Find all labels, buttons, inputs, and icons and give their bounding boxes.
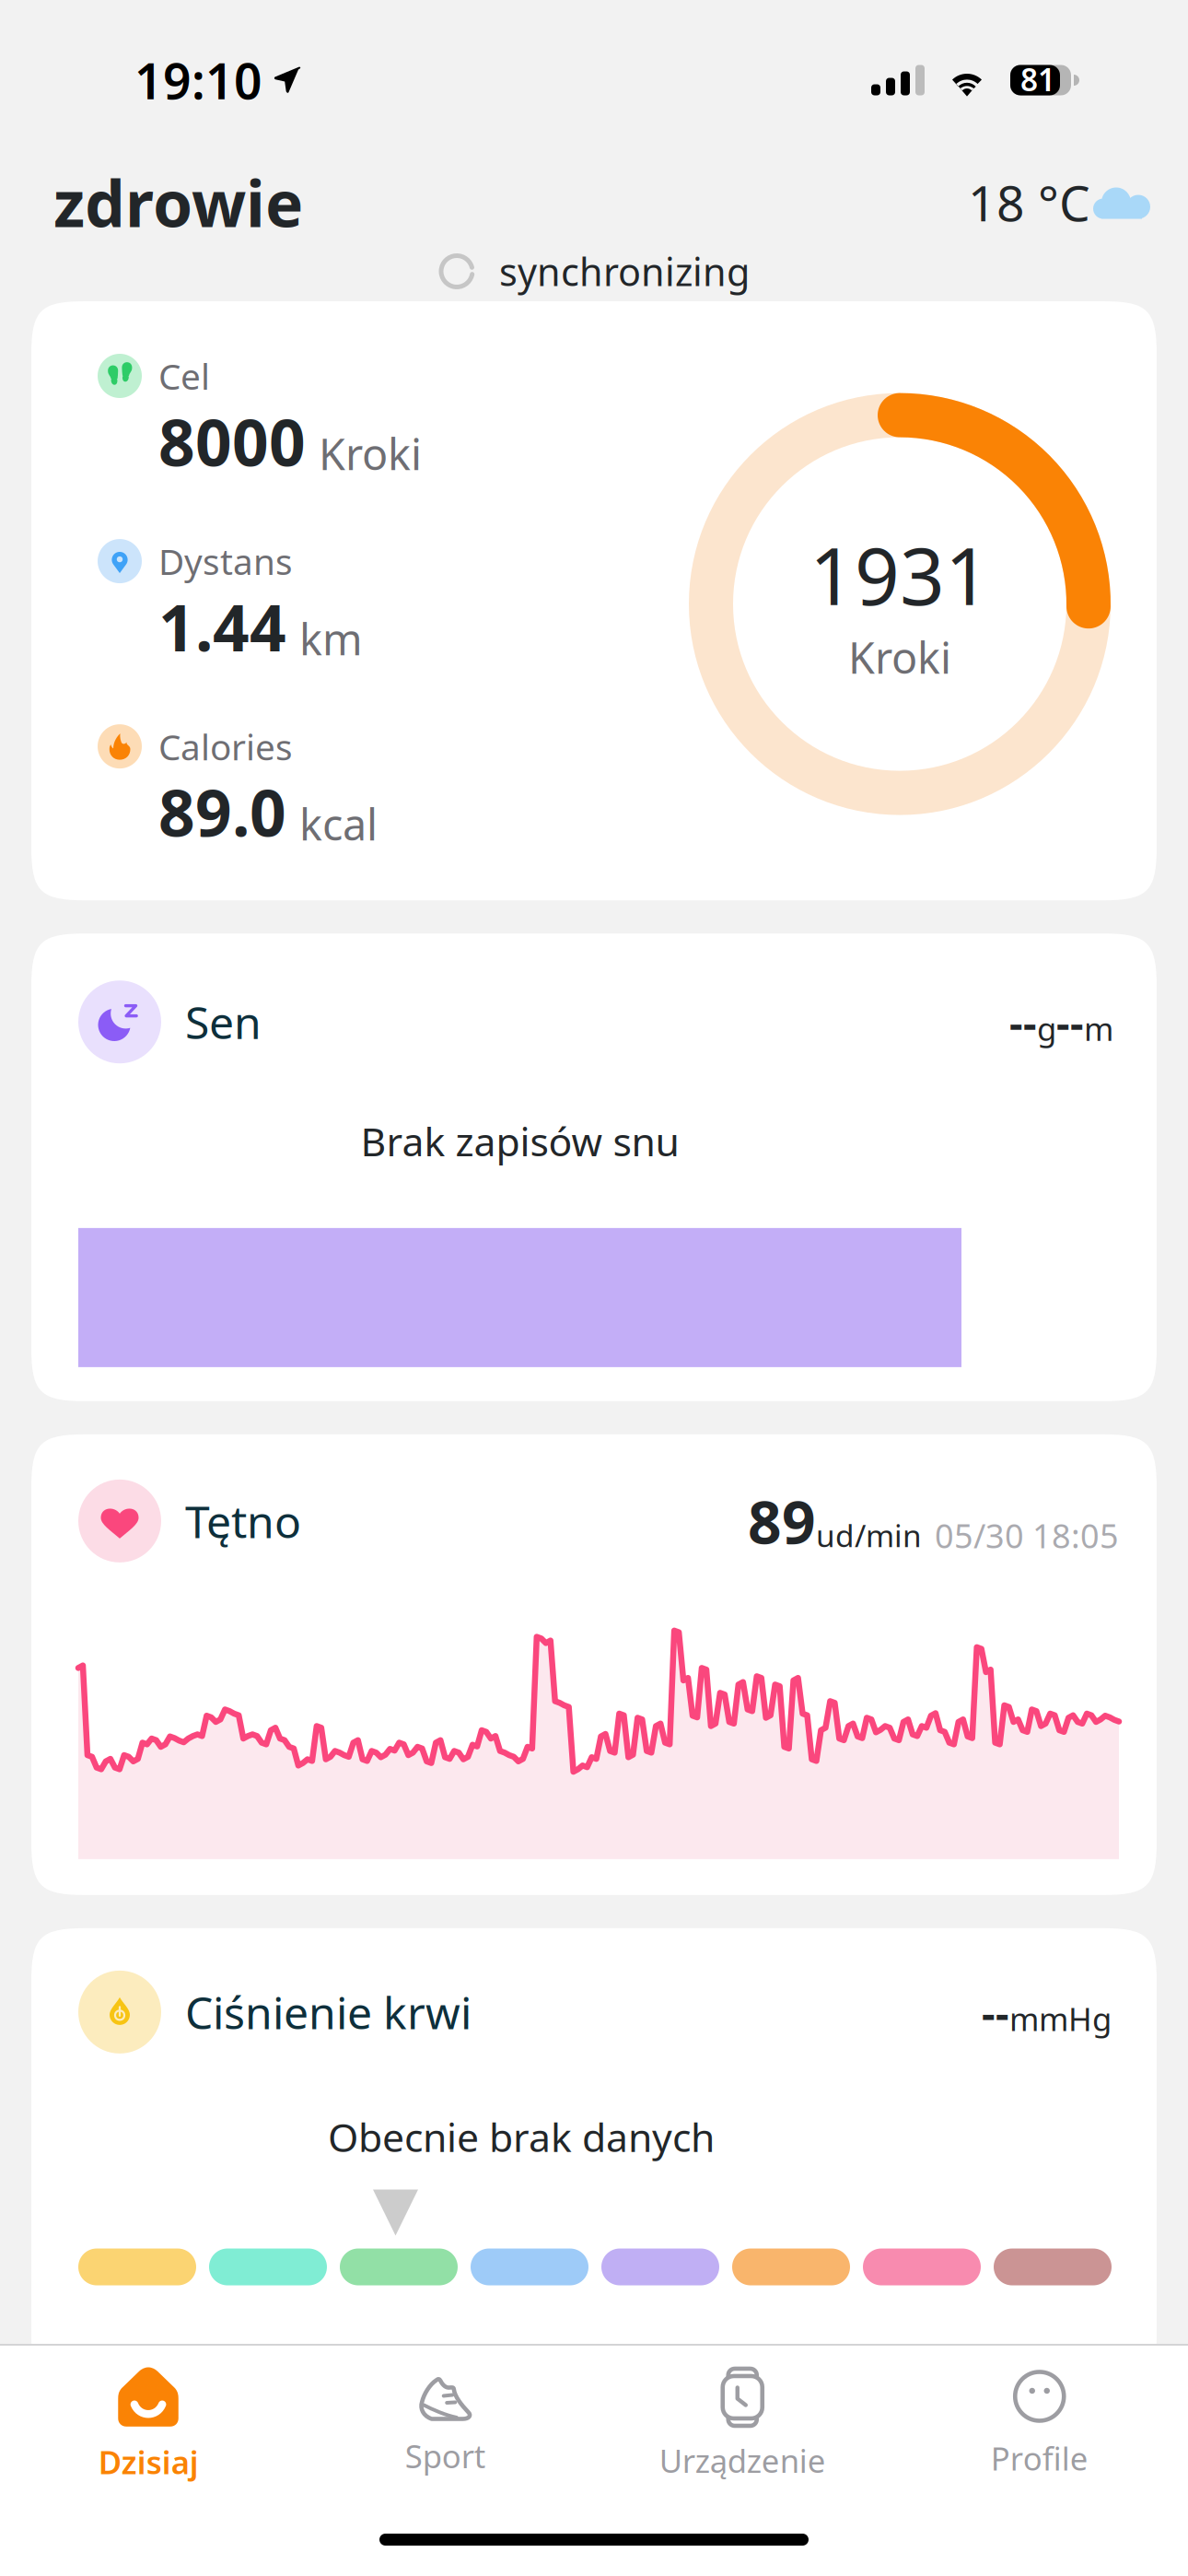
staticText: -- [1056,994,1084,1050]
staticText: 05/30 18:05 [935,1513,1119,1557]
staticText: Obecnie brak danych [328,2111,715,2163]
staticText: 8000 [158,399,306,484]
staticText: m [1084,1007,1113,1050]
button[interactable]: Cel [31,301,1157,900]
staticText: Dystans [158,537,293,585]
staticText: km [299,610,363,667]
staticText: Sen [185,993,262,1051]
staticText: g [1037,1007,1056,1050]
staticText: 89.0 [158,769,286,854]
staticText: -- [1009,994,1037,1050]
staticText: Dzisiaj [98,2441,199,2483]
staticText: synchronizing [499,246,750,297]
staticText: Urządzenie [659,2439,826,2482]
staticText: Profile [991,2437,1088,2479]
staticText: 89 [748,1482,816,1560]
staticText: 1.44 [158,584,286,669]
staticText: 19:10 [134,48,262,113]
staticText: zdrowie [53,160,303,245]
button[interactable]: Tętno [31,1434,1157,1895]
staticText: Cel [158,352,210,399]
staticText: Brak zapisów snu [361,1115,679,1167]
staticText: 81 [1020,59,1055,100]
staticText: Sport [405,2435,486,2477]
staticText: 1931 [809,522,990,627]
button[interactable]: Profile [891,2352,1188,2490]
staticText: ud/min [816,1515,922,1556]
staticText: kcal [299,795,378,852]
staticText: Tętno [185,1492,301,1550]
button[interactable]: Urządzenie [594,2350,891,2493]
button[interactable]: Ciśnienie krwi [31,1928,1157,2387]
staticText: Calories [158,723,293,770]
button[interactable]: Dzisiaj [0,2348,297,2494]
staticText: 18 °C [968,170,1090,235]
staticText: -- [982,1984,1009,2040]
button[interactable]: Sen [31,933,1157,1401]
button[interactable]: Sport [297,2354,594,2488]
staticText: Kroki [319,425,422,482]
staticText: Kroki [848,629,951,686]
staticText: mmHg [1009,1997,1112,2040]
staticText: Ciśnienie krwi [185,1983,472,2041]
